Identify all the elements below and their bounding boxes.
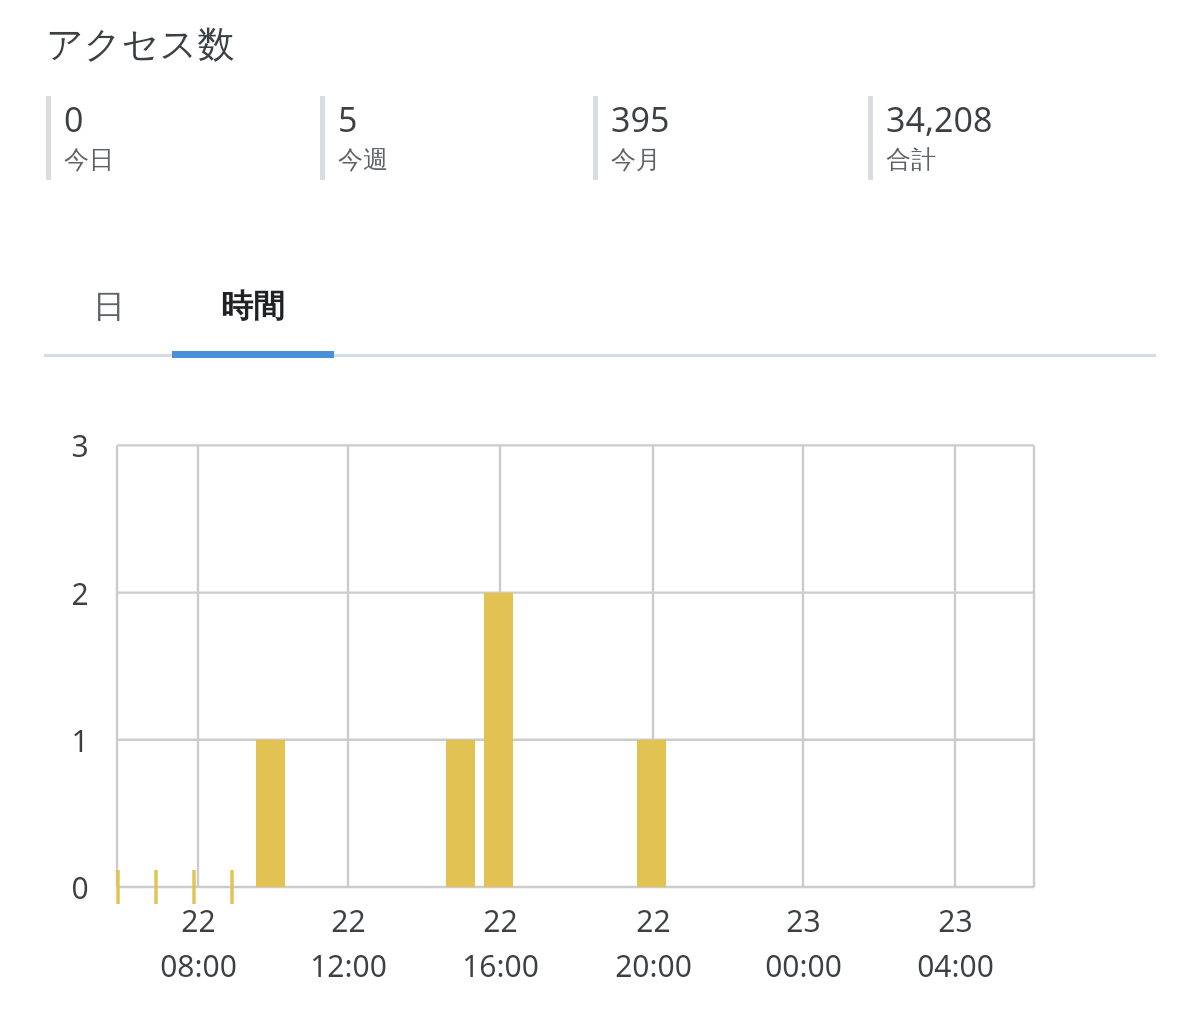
staticText: 3 [71,425,89,466]
staticText: 22 [636,900,671,941]
staticText: 22 [483,900,518,941]
staticText: 34,208 [886,96,993,142]
staticText: 23 [938,900,973,941]
staticText: 395 [611,96,670,142]
button[interactable]: 0 [46,96,306,184]
button[interactable]: 日 [46,258,172,354]
staticText: 日 [93,286,125,326]
staticText: 時間 [221,286,285,326]
staticText: 04:00 [917,945,994,986]
staticText: 今月 [611,144,661,175]
staticText: 16:00 [462,945,539,986]
staticText: 5 [338,96,358,142]
staticText: 合計 [886,144,936,175]
button[interactable]: 34,208 [868,96,1128,184]
staticText: 0 [64,96,84,142]
staticText: 00:00 [765,945,842,986]
staticText: 0 [71,867,89,908]
staticText: 22 [181,900,216,941]
staticText: 20:00 [615,945,692,986]
staticText: 23 [786,900,821,941]
staticText: 今週 [338,144,388,175]
staticText: 12:00 [310,945,387,986]
staticText: 08:00 [160,945,237,986]
staticText: 1 [71,720,89,761]
staticText: 今日 [64,144,114,175]
staticText: 2 [71,573,89,614]
button[interactable]: 時間 [172,258,334,354]
button[interactable]: 5 [320,96,580,184]
staticText: アクセス数 [46,21,235,68]
button[interactable]: 395 [593,96,853,184]
staticText: 22 [331,900,366,941]
